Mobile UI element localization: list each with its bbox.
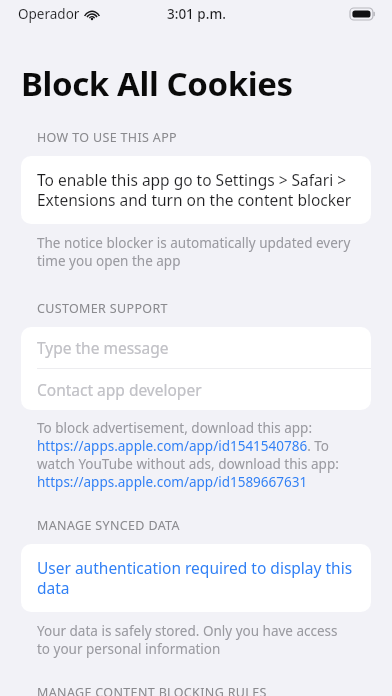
button[interactable]: Type the message [21, 327, 371, 368]
staticText: To block advertisement, download this ap… [37, 419, 351, 491]
staticText: To enable this app go to Settings > Safa… [37, 169, 355, 211]
button[interactable]: User authentication required to display … [21, 544, 371, 612]
staticText: 3:01 p.m. [167, 5, 226, 23]
button[interactable]: To enable this app go to Settings > Safa… [21, 156, 371, 224]
staticText: MANAGE CONTENT BLOCKING RULES [37, 684, 267, 696]
staticText: Contact app developer [37, 379, 202, 400]
staticText: Your data is safely stored. Only you hav… [37, 622, 351, 658]
button[interactable]: Contact app developer [21, 369, 371, 410]
staticText: Block All Cookies [21, 61, 293, 106]
staticText: The notice blocker is automatically upda… [37, 234, 351, 270]
staticText: CUSTOMER SUPPORT [37, 300, 168, 317]
staticText: MANAGE SYNCED DATA [37, 517, 180, 534]
staticText: Operador [18, 5, 80, 23]
staticText: HOW TO USE THIS APP [37, 129, 178, 146]
staticText: User authentication required to display … [37, 557, 355, 599]
staticText: Type the message [37, 337, 169, 358]
